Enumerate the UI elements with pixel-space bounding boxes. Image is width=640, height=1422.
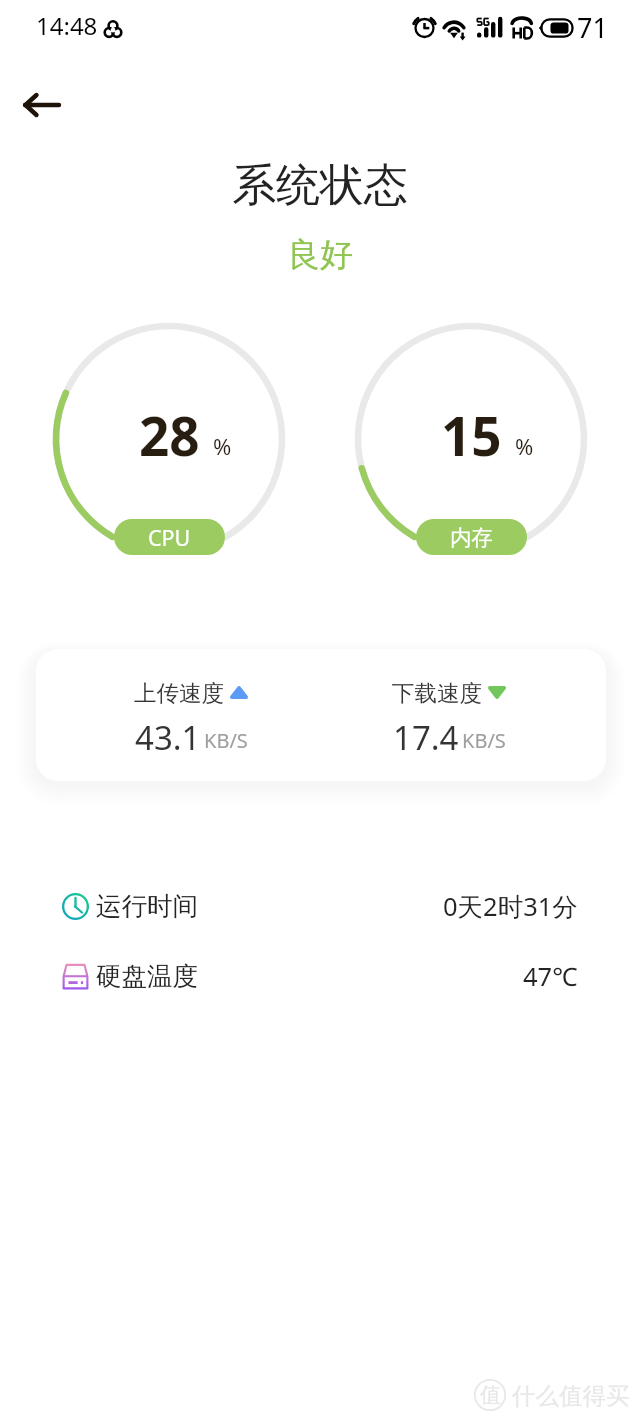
button[interactable]: 上传速度 bbox=[36, 649, 606, 781]
button[interactable]: 运行时间 bbox=[0, 878, 640, 934]
staticText: 15 bbox=[441, 399, 502, 471]
button[interactable]: 内存 bbox=[416, 519, 527, 555]
staticText: 上传速度 bbox=[134, 679, 224, 707]
button[interactable]: Back bbox=[14, 78, 68, 132]
button[interactable]: 硬盘温度 bbox=[0, 948, 640, 1004]
staticText: 硬盘温度 bbox=[96, 960, 198, 992]
staticText: % bbox=[213, 431, 232, 461]
staticText: 内存 bbox=[450, 524, 493, 551]
staticText: 0天2时31分 bbox=[443, 889, 578, 924]
staticText: 运行时间 bbox=[96, 890, 198, 922]
staticText: 良好 bbox=[0, 234, 640, 276]
staticText: 值 bbox=[480, 1382, 501, 1408]
staticText: CPU bbox=[148, 523, 191, 552]
staticText: 47℃ bbox=[523, 959, 578, 994]
button[interactable]: CPU bbox=[114, 519, 225, 555]
staticText: KB/S bbox=[204, 727, 248, 754]
staticText: 系统状态 bbox=[0, 158, 640, 213]
staticText: 17.4 bbox=[393, 715, 459, 760]
staticText: 14:48 bbox=[36, 9, 98, 42]
staticText: 43.1 bbox=[135, 715, 201, 760]
staticText: 什么值得买 bbox=[512, 1381, 630, 1411]
staticText: % bbox=[515, 431, 534, 461]
staticText: 71 bbox=[577, 9, 608, 46]
staticText: 28 bbox=[139, 399, 200, 471]
staticText: 下载速度 bbox=[392, 679, 482, 707]
staticText: KB/S bbox=[462, 727, 506, 754]
